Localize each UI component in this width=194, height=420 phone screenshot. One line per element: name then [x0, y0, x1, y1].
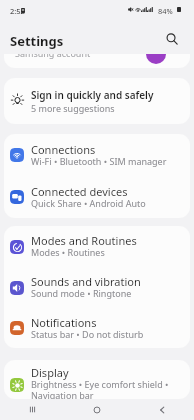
- staticText: Samsung account: [15, 54, 91, 59]
- button[interactable]: Sign in quickly and safely: [4, 78, 190, 124]
- button[interactable]: Modes and Routines: [4, 226, 190, 267]
- staticText: Modes • Routines: [31, 246, 105, 258]
- button[interactable]: Sounds and vibration: [4, 267, 190, 308]
- staticText: Modes and Routines: [31, 233, 137, 248]
- button[interactable]: Search: [162, 29, 182, 49]
- button[interactable]: Notifications: [4, 308, 190, 348]
- staticText: Brightness • Eye comfort shield •: [31, 378, 169, 390]
- staticText: Display: [31, 365, 69, 380]
- button[interactable]: Connected devices: [4, 176, 190, 218]
- button[interactable]: Samsung account: [4, 54, 190, 68]
- staticText: Connected devices: [31, 184, 128, 199]
- staticText: Sign in quickly and safely: [31, 88, 154, 102]
- staticText: Navigation bar: [31, 389, 94, 399]
- staticText: 5 more suggestions: [31, 102, 115, 114]
- staticText: Quick Share • Android Auto: [31, 197, 146, 209]
- staticText: Connections: [31, 142, 96, 157]
- button[interactable]: Connections: [4, 134, 190, 176]
- staticText: Status bar • Do not disturb: [31, 328, 144, 340]
- button[interactable]: Recents: [0, 399, 64, 420]
- staticText: Settings: [10, 32, 64, 50]
- staticText: 2:52: [10, 6, 25, 16]
- staticText: 84%: [158, 6, 173, 16]
- staticText: Sound mode • Ringtone: [31, 287, 132, 299]
- button[interactable]: Home: [64, 399, 129, 420]
- staticText: Sounds and vibration: [31, 274, 141, 289]
- staticText: Notifications: [31, 315, 97, 330]
- button[interactable]: Back: [129, 399, 194, 420]
- button[interactable]: Display: [4, 360, 190, 399]
- staticText: Wi-Fi • Bluetooth • SIM manager: [31, 155, 167, 167]
